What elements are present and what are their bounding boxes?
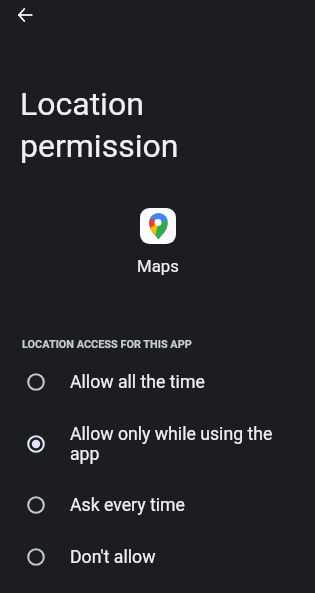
button[interactable]: Back [6, 0, 43, 33]
staticText: Ask every time [70, 495, 186, 515]
staticText: Location permission [20, 82, 179, 166]
staticText: Don't allow [70, 547, 156, 567]
staticText: Allow all the time [70, 372, 205, 392]
button[interactable]: Don't allow [0, 531, 315, 583]
button[interactable]: Allow all the time [0, 356, 315, 408]
button[interactable]: Ask every time [0, 479, 315, 531]
button[interactable]: Allow only while using the app [0, 408, 315, 479]
staticText: LOCATION ACCESS FOR THIS APP [22, 338, 192, 351]
staticText: Allow only while using the app [70, 424, 283, 464]
staticText: Maps [137, 256, 179, 276]
